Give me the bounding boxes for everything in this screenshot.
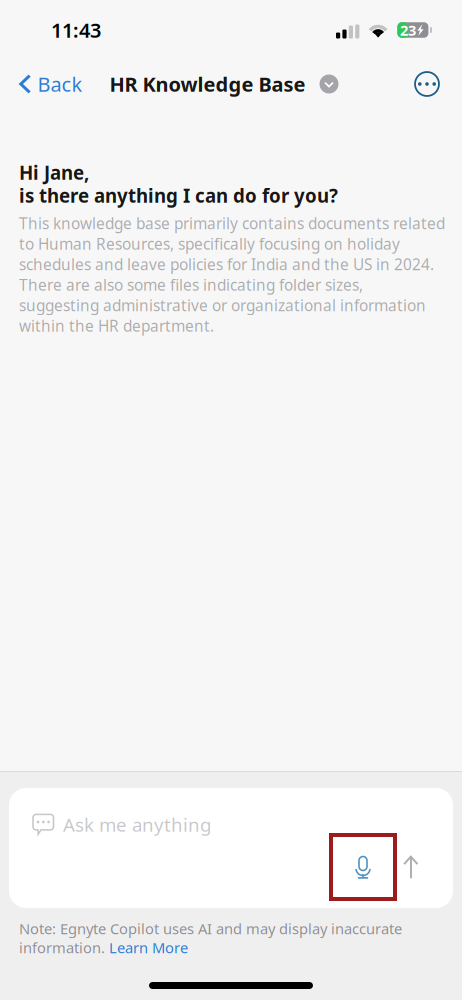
button[interactable]: More options xyxy=(406,63,448,105)
staticText: There are also some files indicating fol… xyxy=(19,274,363,295)
staticText: Learn More xyxy=(109,938,188,957)
staticText: Note: Egnyte Copilot uses AI and may dis… xyxy=(19,919,402,938)
staticText: within the HR department. xyxy=(19,315,214,336)
button[interactable]: Dictate xyxy=(331,835,395,899)
staticText: HR Knowledge Base xyxy=(109,71,305,97)
staticText: Back xyxy=(37,71,82,97)
staticText: 11:43 xyxy=(51,17,101,43)
button[interactable]: Send xyxy=(395,842,427,892)
staticText: to Human Resources, specifically focusin… xyxy=(19,233,400,254)
staticText: Hi Jane, xyxy=(19,160,89,185)
staticText: 23 xyxy=(400,20,416,40)
staticText: suggesting administrative or organizatio… xyxy=(19,295,426,316)
button[interactable]: Back xyxy=(0,62,92,106)
button[interactable]: Learn More xyxy=(109,938,188,957)
staticText: is there anything I can do for you? xyxy=(19,183,338,208)
staticText: This knowledge base primarily contains d… xyxy=(19,213,445,234)
staticText: schedules and leave policies for India a… xyxy=(19,254,434,275)
staticText: Ask me anything xyxy=(63,812,211,837)
button[interactable]: Change knowledge base xyxy=(305,64,346,103)
staticText: information. xyxy=(19,938,109,957)
